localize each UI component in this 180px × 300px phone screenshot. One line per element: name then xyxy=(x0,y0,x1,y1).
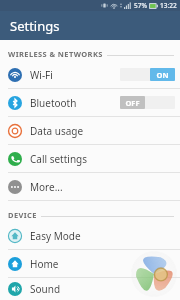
button[interactable]: Bluetooth xyxy=(0,89,180,116)
staticText: Sound xyxy=(30,282,61,296)
staticText: More... xyxy=(30,180,63,194)
button[interactable]: Call settings xyxy=(0,145,180,172)
staticText: DEVICE xyxy=(8,210,37,220)
staticText: Wi-Fi xyxy=(30,68,53,82)
staticText: Data usage xyxy=(30,124,84,138)
button[interactable]: More... xyxy=(0,173,180,200)
staticText: Call settings xyxy=(30,152,88,166)
button[interactable]: Turn on xyxy=(120,96,175,109)
staticText: ON xyxy=(156,70,169,80)
button[interactable]: Data usage xyxy=(0,117,180,144)
button[interactable]: Turn off xyxy=(120,68,175,81)
staticText: WIRELESS & NETWORKS xyxy=(8,49,103,59)
staticText: OFF xyxy=(125,98,140,108)
button[interactable]: Easy Mode xyxy=(0,222,180,249)
staticText: Easy Mode xyxy=(30,229,81,243)
staticText: Home xyxy=(30,257,59,271)
button[interactable]: Wi-Fi xyxy=(0,61,180,88)
button[interactable]: Sound xyxy=(0,278,180,300)
staticText: 57% xyxy=(134,1,147,10)
staticText: Bluetooth xyxy=(30,96,77,110)
staticText: Settings xyxy=(10,17,60,35)
button[interactable]: Home xyxy=(0,250,180,277)
staticText: 13:22 xyxy=(160,1,177,10)
